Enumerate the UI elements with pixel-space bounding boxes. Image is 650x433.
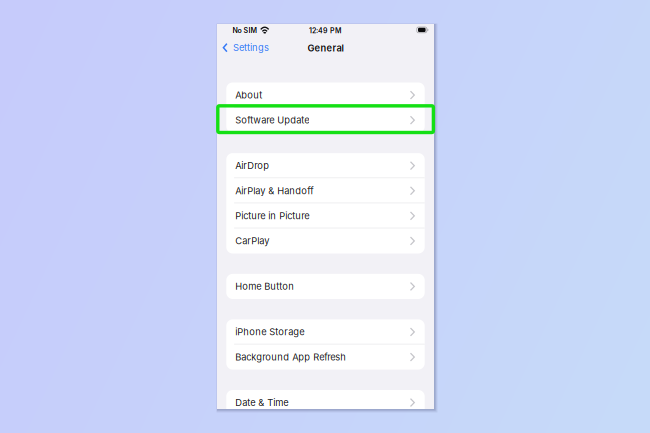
staticText: CarPlay [235,235,269,247]
button[interactable]: AirDrop [226,153,425,178]
staticText: AirPlay & Handoff [235,185,313,196]
staticText: No SIM [233,26,258,35]
staticText: General [307,42,343,54]
button[interactable]: AirPlay & Handoff [226,178,425,203]
button[interactable]: Background App Refresh [226,344,425,370]
staticText: Date & Time [235,397,288,408]
button[interactable]: Home Button [226,274,425,299]
staticText: Software Update [235,114,309,126]
staticText: About [235,89,262,101]
staticText: Background App Refresh [235,351,346,363]
staticText: Settings [233,42,269,53]
button[interactable]: About [226,82,425,108]
button[interactable]: CarPlay [226,228,425,253]
button[interactable]: Settings [217,37,273,58]
staticText: 12:49 PM [309,26,342,35]
button[interactable]: Date & Time [226,390,425,415]
staticText: Picture in Picture [235,210,309,221]
staticText: Home Button [235,281,294,292]
button[interactable]: Picture in Picture [226,203,425,228]
button[interactable]: Software Update [226,108,425,133]
staticText: iPhone Storage [235,326,304,338]
button[interactable]: iPhone Storage [226,319,425,344]
staticText: AirDrop [235,160,269,171]
